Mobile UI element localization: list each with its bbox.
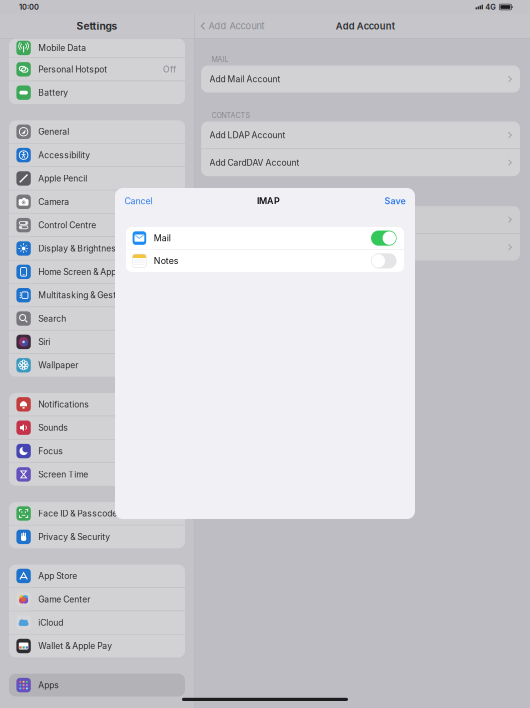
button[interactable]: Battery	[9, 81, 185, 104]
button[interactable]: Apps	[9, 674, 185, 696]
staticText: Settings	[76, 20, 117, 32]
button[interactable]: Notifications	[9, 393, 185, 416]
staticText: 4G	[485, 2, 496, 11]
staticText: Add Account	[209, 20, 265, 31]
staticText: 10:00	[19, 2, 39, 11]
staticText: General	[38, 127, 69, 137]
staticText: Camera	[38, 197, 69, 207]
button[interactable]: Personal Hotspot	[9, 58, 185, 81]
staticText: Accessibility	[38, 150, 90, 160]
staticText: Add LDAP Account	[210, 130, 286, 140]
button[interactable]: Camera	[9, 190, 185, 213]
button[interactable]: Multitasking & Gestures	[9, 284, 185, 307]
staticText: Privacy & Security	[38, 532, 110, 542]
staticText: Game Center	[38, 594, 90, 604]
staticText: Add Other Calendar	[210, 242, 289, 252]
button[interactable]: Face ID & Passcode	[9, 502, 185, 525]
button[interactable]: Search	[9, 307, 185, 330]
staticText: Apple Pencil	[38, 173, 87, 184]
staticText: MAIL	[212, 55, 229, 64]
staticText: Save	[384, 196, 405, 206]
staticText: Apps	[38, 680, 59, 690]
staticText: Off	[163, 64, 176, 74]
button[interactable]: Add Other Calendar	[201, 234, 520, 261]
button[interactable]: Save	[384, 188, 415, 214]
staticText: Home Screen & App Library	[38, 267, 146, 277]
staticText: Add CardDAV Account	[210, 157, 300, 168]
staticText: Siri	[38, 337, 50, 347]
staticText: CONTACTS	[212, 111, 251, 120]
staticText: App Store	[38, 571, 77, 581]
button[interactable]: Wallet & Apple Pay	[9, 635, 185, 657]
button[interactable]: General	[9, 120, 185, 143]
button[interactable]: Add Subscribed Calendar	[201, 206, 520, 233]
staticText: Wallet & Apple Pay	[38, 641, 112, 651]
staticText: IMAP	[257, 196, 280, 206]
button[interactable]: Apple Pencil	[9, 167, 185, 190]
button[interactable]: Control Centre	[9, 214, 185, 237]
staticText: Sounds	[38, 422, 68, 433]
button[interactable]: Mobile Data	[9, 38, 185, 57]
button[interactable]: App Store	[9, 564, 185, 587]
staticText: Search	[38, 313, 66, 324]
button[interactable]: Add CardDAV Account	[201, 149, 520, 176]
button[interactable]: Notes	[126, 250, 404, 272]
staticText: Mobile Data	[38, 43, 86, 53]
staticText: Cancel	[124, 196, 152, 206]
button[interactable]: Accessibility	[9, 144, 185, 166]
button[interactable]: Mail	[126, 227, 404, 249]
button[interactable]: Wallpaper	[9, 354, 185, 377]
button[interactable]: Cancel	[115, 188, 152, 214]
button[interactable]: Add LDAP Account	[201, 121, 520, 148]
staticText: Mail	[154, 233, 171, 243]
button[interactable]: Sounds	[9, 416, 185, 439]
staticText: Add Account	[336, 20, 395, 32]
staticText: Screen Time	[38, 469, 88, 479]
staticText: Multitasking & Gestures	[38, 290, 134, 300]
staticText: Battery	[38, 87, 68, 98]
staticText: Control Centre	[38, 220, 96, 230]
button[interactable]: Focus	[9, 440, 185, 462]
button[interactable]: Add Mail Account	[201, 65, 520, 92]
button[interactable]: Game Center	[9, 588, 185, 611]
button[interactable]: Add Account	[195, 14, 265, 38]
button[interactable]: Siri	[9, 330, 185, 353]
staticText: iCloud	[38, 617, 63, 628]
button[interactable]: Screen Time	[9, 463, 185, 486]
staticText: Add Mail Account	[210, 74, 281, 84]
staticText: Notes	[154, 255, 179, 266]
button[interactable]: Privacy & Security	[9, 525, 185, 548]
staticText: Wallpaper	[38, 360, 78, 370]
staticText: Focus	[38, 446, 63, 456]
button[interactable]: Display & Brightness	[9, 237, 185, 260]
button[interactable]: iCloud	[9, 611, 185, 634]
staticText: Personal Hotspot	[38, 64, 107, 74]
staticText: Face ID & Passcode	[38, 508, 117, 519]
staticText: Notifications	[38, 399, 89, 409]
staticText: Display & Brightness	[38, 243, 121, 254]
button[interactable]: Home Screen & App Library	[9, 260, 185, 283]
